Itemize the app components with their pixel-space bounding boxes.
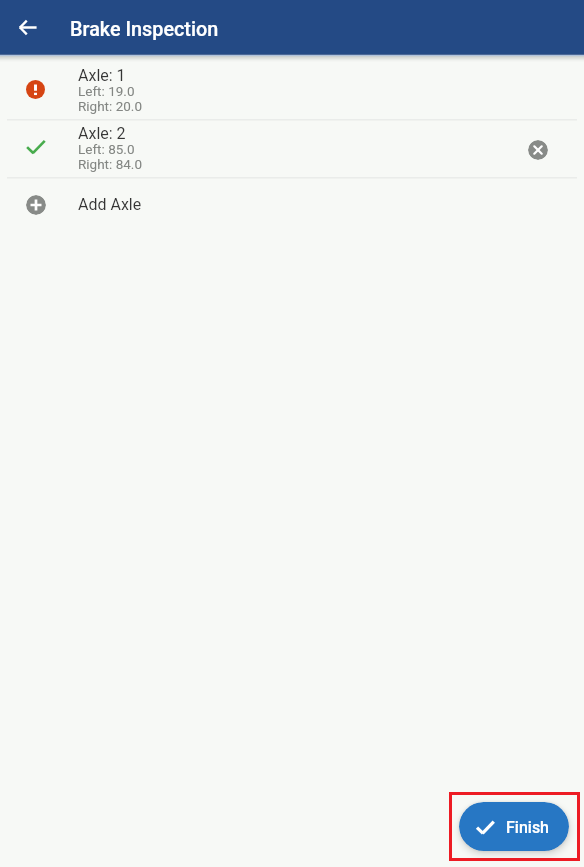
staticText: Add Axle (78, 195, 142, 214)
staticText: Axle: 1 (78, 66, 126, 85)
staticText: Left: 85.0 (78, 141, 135, 157)
staticText: Right: 20.0 (78, 98, 142, 114)
button[interactable]: Remove axle (528, 140, 548, 160)
button[interactable]: Add Axle (0, 179, 584, 236)
button[interactable]: Axle: 1 (0, 63, 584, 120)
staticText: Left: 19.0 (78, 83, 135, 99)
staticText: Right: 84.0 (78, 156, 142, 172)
staticText: Brake Inspection (70, 20, 219, 40)
button[interactable]: Axle: 2 (0, 121, 584, 178)
button[interactable]: Finish (459, 802, 569, 851)
staticText: Finish (506, 818, 549, 837)
staticText: Axle: 2 (78, 124, 126, 143)
button[interactable]: Back (11, 10, 45, 44)
